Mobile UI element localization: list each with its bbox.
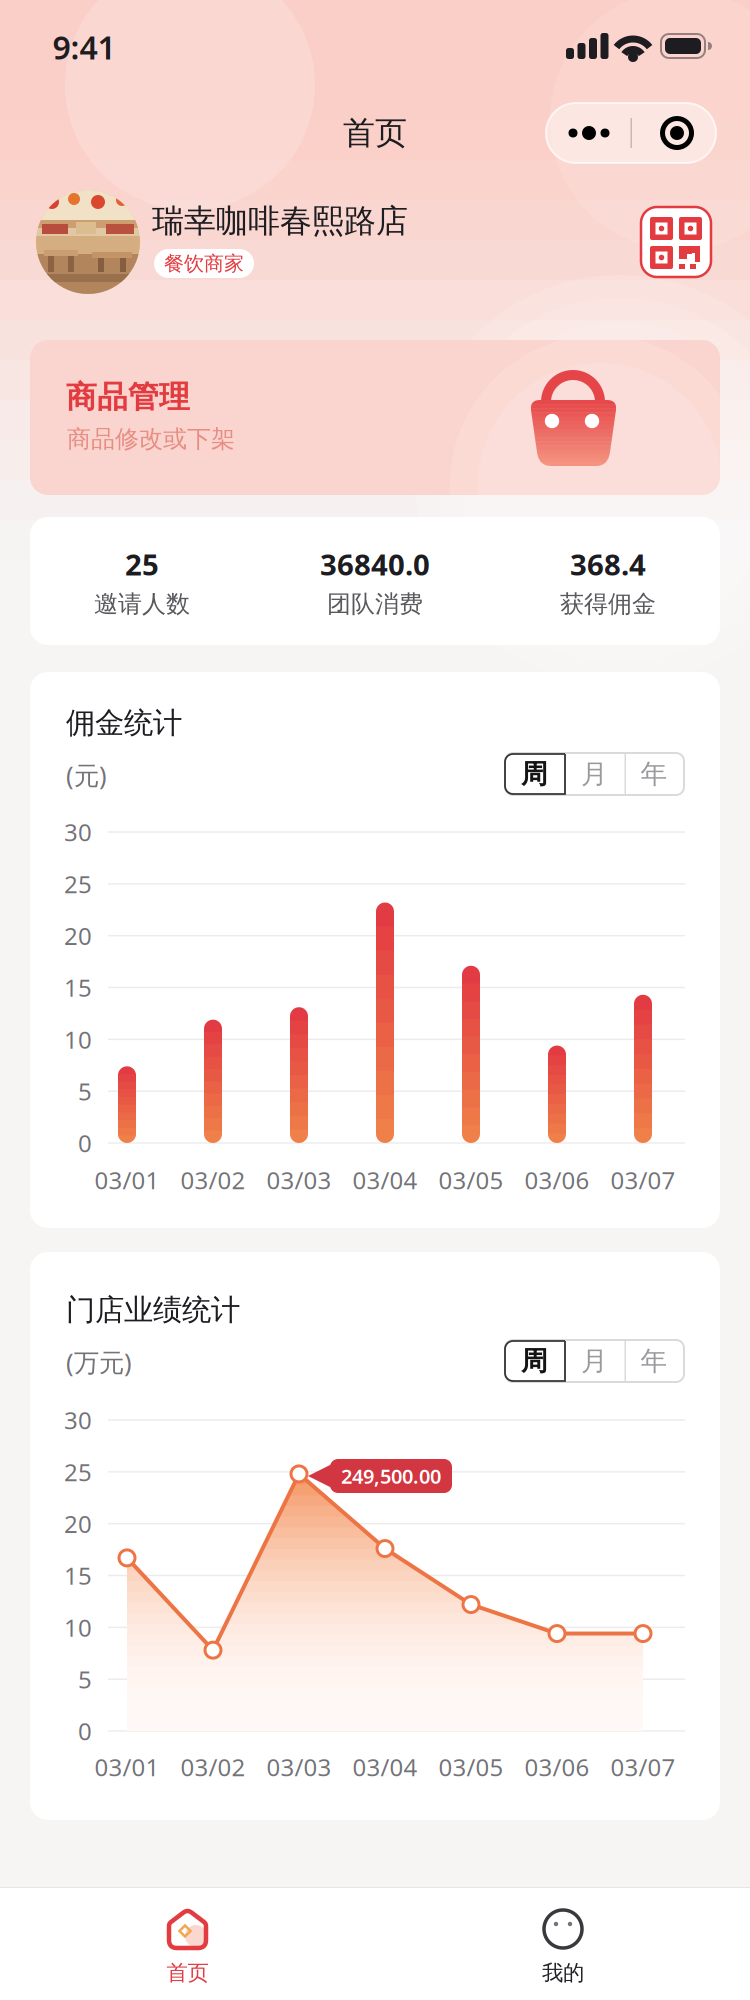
- button[interactable]: 年: [624, 1340, 683, 1382]
- staticText: 瑞幸咖啡春熙路店: [152, 201, 408, 241]
- staticText: 周: [521, 758, 548, 790]
- staticText: 10: [64, 1023, 92, 1055]
- button[interactable]: 周: [505, 753, 564, 795]
- button[interactable]: 年: [624, 753, 683, 795]
- staticText: 25: [64, 868, 92, 900]
- staticText: 我的: [542, 1960, 584, 1986]
- button[interactable]: 首页: [0, 1887, 375, 2000]
- staticText: 0: [78, 1715, 92, 1747]
- staticText: 30: [64, 816, 92, 848]
- staticText: 商品修改或下架: [67, 424, 235, 454]
- staticText: 餐饮商家: [164, 251, 244, 276]
- staticText: 15: [64, 972, 92, 1003]
- staticText: 20: [64, 920, 92, 952]
- staticText: 团队消费: [327, 589, 423, 619]
- staticText: 商品管理: [66, 378, 190, 416]
- staticText: 03/01: [94, 1751, 159, 1783]
- staticText: 03/03: [266, 1164, 331, 1196]
- staticText: 月: [581, 758, 608, 790]
- button[interactable]: QR code: [641, 207, 711, 277]
- staticText: 首页: [343, 113, 407, 153]
- staticText: (万元): [66, 1345, 132, 1379]
- staticText: 03/07: [610, 1751, 675, 1783]
- button[interactable]: 周: [505, 1340, 564, 1382]
- staticText: 15: [64, 1560, 92, 1591]
- staticText: 25: [125, 544, 159, 583]
- staticText: 月: [581, 1345, 608, 1377]
- staticText: 03/06: [524, 1164, 589, 1196]
- staticText: (元): [66, 758, 107, 792]
- button[interactable]: More: [546, 103, 632, 163]
- staticText: 5: [78, 1075, 92, 1107]
- staticText: 03/02: [180, 1751, 245, 1783]
- button[interactable]: 我的: [375, 1887, 750, 2000]
- button[interactable]: 月: [565, 1340, 624, 1382]
- staticText: 0: [78, 1127, 92, 1159]
- staticText: 年: [640, 1345, 667, 1377]
- button[interactable]: Close: [632, 103, 718, 163]
- staticText: 5: [78, 1663, 92, 1695]
- staticText: 249,500.00: [341, 1463, 441, 1489]
- staticText: 03/04: [352, 1164, 417, 1196]
- staticText: 门店业绩统计: [66, 1292, 240, 1328]
- staticText: 03/05: [438, 1751, 503, 1783]
- staticText: 10: [64, 1611, 92, 1643]
- staticText: 36840.0: [320, 544, 430, 583]
- staticText: 03/06: [524, 1751, 589, 1783]
- staticText: 03/01: [94, 1164, 159, 1196]
- staticText: 邀请人数: [94, 589, 190, 619]
- staticText: 年: [640, 758, 667, 790]
- staticText: 30: [64, 1404, 92, 1436]
- staticText: 03/02: [180, 1164, 245, 1196]
- staticText: 9:41: [52, 26, 115, 68]
- staticText: 368.4: [570, 544, 646, 583]
- staticText: 03/03: [266, 1751, 331, 1783]
- staticText: 周: [521, 1345, 548, 1377]
- staticText: 25: [64, 1456, 92, 1488]
- button[interactable]: 商品管理: [30, 340, 720, 495]
- staticText: 首页: [166, 1960, 208, 1986]
- staticText: 03/04: [352, 1751, 417, 1783]
- staticText: 03/07: [610, 1164, 675, 1196]
- staticText: 获得佣金: [560, 589, 656, 619]
- staticText: 03/05: [438, 1164, 503, 1196]
- staticText: 20: [64, 1508, 92, 1540]
- button[interactable]: 月: [565, 753, 624, 795]
- staticText: 佣金统计: [66, 705, 182, 741]
